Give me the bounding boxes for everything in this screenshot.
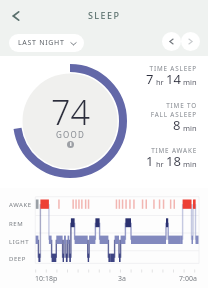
staticText: 10:18p [35, 274, 58, 284]
staticText: 7 [146, 70, 154, 88]
staticText: hr [154, 77, 166, 87]
staticText: TIME AWAKE [151, 146, 197, 155]
button[interactable]: Back [5, 5, 27, 27]
staticText: min [181, 77, 197, 87]
staticText: GOOD [56, 129, 85, 140]
staticText: 1 [146, 152, 154, 170]
button[interactable]: Next night [181, 32, 200, 51]
staticText: 7:00a [179, 274, 197, 284]
staticText: FALL ASLEEP [150, 110, 197, 119]
staticText: min [181, 159, 197, 169]
staticText: 18 [166, 152, 181, 170]
staticText: REM [9, 220, 24, 228]
staticText: LAST NIGHT [18, 38, 65, 48]
staticText: hr [154, 159, 166, 169]
staticText: i [70, 141, 72, 148]
staticText: 14 [166, 70, 181, 88]
staticText: 74 [51, 89, 90, 135]
staticText: SLEEP [88, 9, 121, 21]
staticText: TIME ASLEEP [149, 64, 197, 73]
staticText: LIGHT [9, 238, 30, 246]
staticText: TIME TO [166, 101, 197, 110]
staticText: 8 [173, 116, 181, 134]
button[interactable]: Previous night [162, 32, 181, 51]
staticText: DEEP [9, 255, 26, 263]
staticText: AWAKE [9, 201, 32, 209]
button[interactable]: Info [67, 141, 74, 148]
button[interactable]: LAST NIGHT [9, 34, 84, 52]
staticText: 3a [118, 274, 126, 284]
staticText: min [181, 123, 197, 133]
